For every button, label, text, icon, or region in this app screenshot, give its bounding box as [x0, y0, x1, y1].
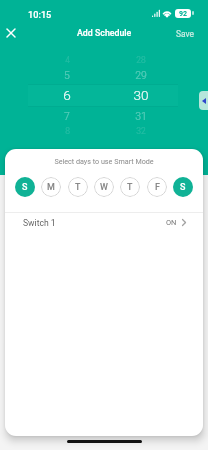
staticText: Select days to use Smart Mode	[5, 157, 203, 165]
staticText: T	[127, 182, 133, 193]
staticText: 7	[64, 110, 70, 122]
staticText: 10:15	[28, 9, 52, 20]
staticText: 28	[136, 55, 146, 65]
staticText: 30	[133, 87, 149, 103]
button[interactable]: F	[147, 177, 167, 197]
staticText: F	[155, 182, 160, 193]
button[interactable]: Expand panel	[199, 91, 208, 110]
button[interactable]: T	[120, 177, 140, 197]
staticText: S	[180, 182, 186, 193]
staticText: 32	[136, 126, 146, 136]
staticText: Add Schedule	[77, 28, 132, 38]
button[interactable]: T	[68, 177, 88, 197]
staticText: 29	[135, 69, 147, 81]
staticText: 5	[64, 69, 70, 81]
staticText: 92	[179, 10, 188, 18]
button[interactable]: S	[173, 177, 193, 197]
staticText: S	[22, 182, 28, 193]
staticText: M	[47, 182, 55, 193]
staticText: W	[100, 182, 108, 193]
staticText: Switch 1	[23, 218, 56, 228]
button[interactable]: Save	[169, 23, 201, 45]
staticText: 31	[135, 110, 147, 122]
button[interactable]: Close	[0, 22, 21, 43]
staticText: 4	[65, 55, 70, 65]
staticText: ON	[166, 218, 177, 227]
staticText: Save	[176, 29, 194, 39]
staticText: T	[75, 182, 81, 193]
button[interactable]: W	[94, 177, 114, 197]
button[interactable]: Switch 1	[5, 213, 203, 232]
button[interactable]: M	[41, 177, 61, 197]
button[interactable]: S	[15, 177, 35, 197]
staticText: 8	[65, 126, 70, 136]
staticText: 6	[63, 87, 71, 103]
